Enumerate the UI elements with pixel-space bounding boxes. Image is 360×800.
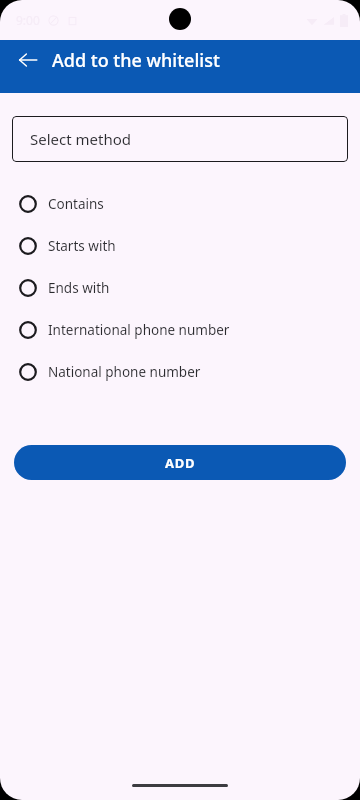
staticText: Add to the whitelist: [52, 48, 220, 73]
staticText: Contains: [48, 195, 104, 213]
button[interactable]: Select method: [12, 116, 348, 162]
button[interactable]: Back: [8, 40, 48, 80]
button[interactable]: National phone number: [0, 351, 360, 393]
staticText: ADD: [165, 454, 196, 472]
staticText: 9:00: [16, 12, 40, 28]
button[interactable]: Starts with: [0, 225, 360, 267]
button[interactable]: Contains: [0, 183, 360, 225]
staticText: International phone number: [48, 321, 230, 339]
button[interactable]: International phone number: [0, 309, 360, 351]
button[interactable]: ADD: [14, 445, 346, 480]
button[interactable]: Ends with: [0, 267, 360, 309]
staticText: National phone number: [48, 363, 201, 381]
staticText: Starts with: [48, 237, 116, 255]
staticText: Select method: [30, 129, 132, 149]
staticText: Ends with: [48, 279, 110, 297]
